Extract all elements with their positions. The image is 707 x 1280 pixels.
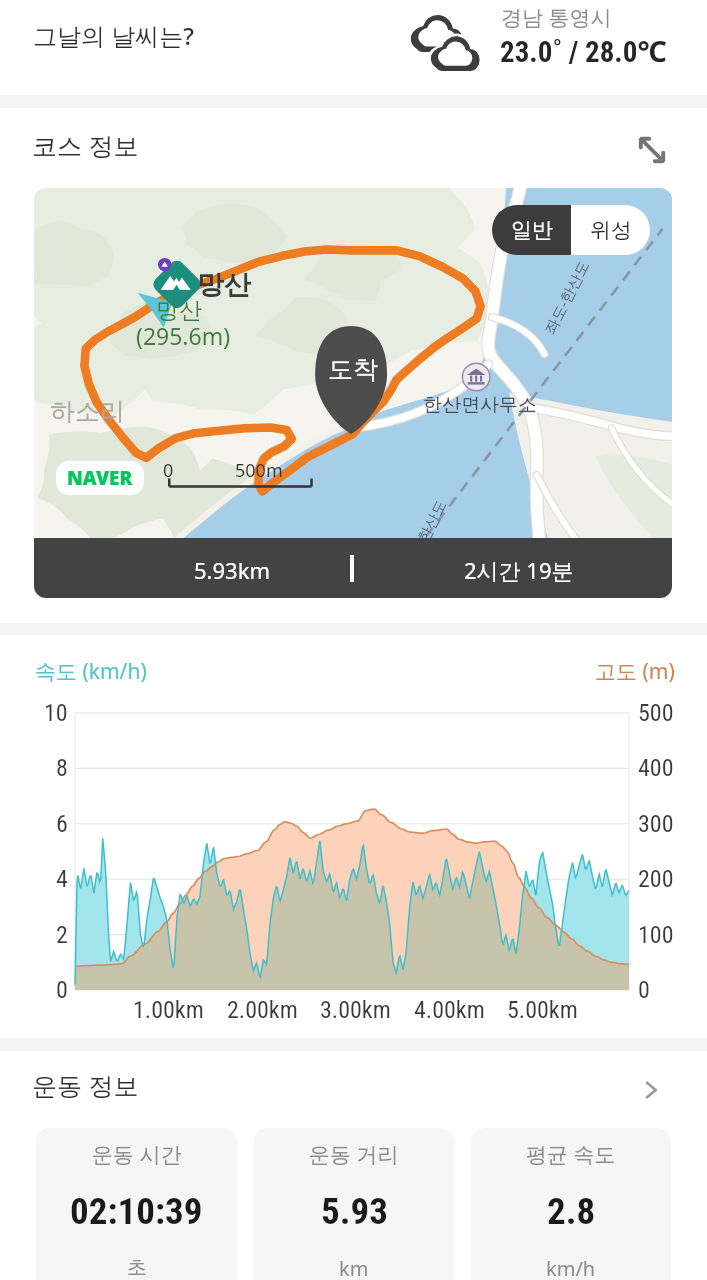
staticText: 도착: [328, 354, 378, 385]
staticText: 2: [56, 921, 68, 949]
staticText: 초: [127, 1255, 147, 1280]
button[interactable]: 망산: [34, 188, 672, 598]
staticText: 망산: [197, 268, 251, 302]
staticText: 평균 속도: [526, 1140, 616, 1169]
button[interactable]: 운동 거리: [254, 1128, 454, 1280]
staticText: 0: [638, 976, 650, 1004]
staticText: 02:10:39: [70, 1190, 203, 1233]
staticText: 3.00km: [320, 996, 391, 1024]
staticText: 4.00km: [414, 996, 485, 1024]
button[interactable]: [0, 1051, 707, 1129]
staticText: 1.00km: [133, 996, 204, 1024]
staticText: 운동 시간: [92, 1140, 182, 1169]
button[interactable]: 운동 시간: [36, 1128, 237, 1280]
staticText: NAVER: [67, 465, 133, 491]
button[interactable]: Expand map: [628, 126, 676, 174]
staticText: 23.0˚ / 28.0℃: [500, 31, 667, 70]
staticText: 그날의 날씨는?: [33, 19, 194, 52]
staticText: 운동 거리: [309, 1140, 399, 1169]
staticText: 5.00km: [507, 996, 578, 1024]
staticText: 한산도: [414, 497, 451, 546]
staticText: 300: [638, 810, 674, 838]
staticText: 2.8: [547, 1190, 596, 1233]
staticText: 운동 정보: [32, 1068, 139, 1102]
staticText: 0: [163, 458, 174, 483]
staticText: 5.93: [321, 1190, 388, 1233]
staticText: 200: [638, 865, 674, 893]
staticText: km/h: [546, 1255, 596, 1280]
staticText: 한산면사무소: [423, 393, 537, 417]
staticText: 0: [56, 976, 68, 1004]
button[interactable]: [0, 0, 707, 95]
staticText: 500m: [235, 458, 283, 483]
staticText: 경남 통영시: [501, 3, 612, 32]
staticText: 코스 정보: [32, 128, 139, 162]
staticText: 5.93km: [194, 555, 270, 585]
staticText: 망산: [156, 296, 202, 325]
button[interactable]: 위성: [571, 205, 650, 255]
staticText: 2시간 19분: [464, 555, 574, 585]
staticText: 일반: [511, 217, 553, 243]
staticText: 500: [638, 699, 674, 727]
button[interactable]: 평균 속도: [471, 1128, 671, 1280]
staticText: 100: [638, 921, 674, 949]
staticText: 400: [638, 754, 674, 782]
staticText: 고도 (m): [595, 657, 675, 686]
staticText: 2.00km: [227, 996, 298, 1024]
staticText: 6: [56, 810, 68, 838]
staticText: (295.6m): [136, 320, 231, 351]
staticText: 좌도-한산도: [539, 257, 593, 337]
staticText: 4: [56, 865, 68, 893]
staticText: 하소리: [50, 396, 125, 427]
staticText: 위성: [590, 217, 632, 243]
staticText: km: [339, 1255, 369, 1280]
staticText: 8: [56, 754, 68, 782]
staticText: 속도 (km/h): [35, 657, 147, 686]
staticText: 10: [44, 699, 68, 727]
button[interactable]: 일반: [492, 205, 571, 255]
